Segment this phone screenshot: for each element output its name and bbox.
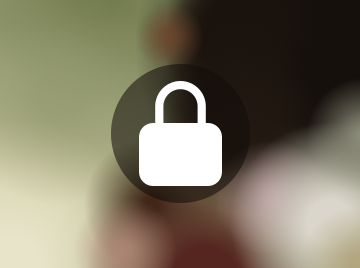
button[interactable]: Content hidden: [111, 64, 250, 203]
